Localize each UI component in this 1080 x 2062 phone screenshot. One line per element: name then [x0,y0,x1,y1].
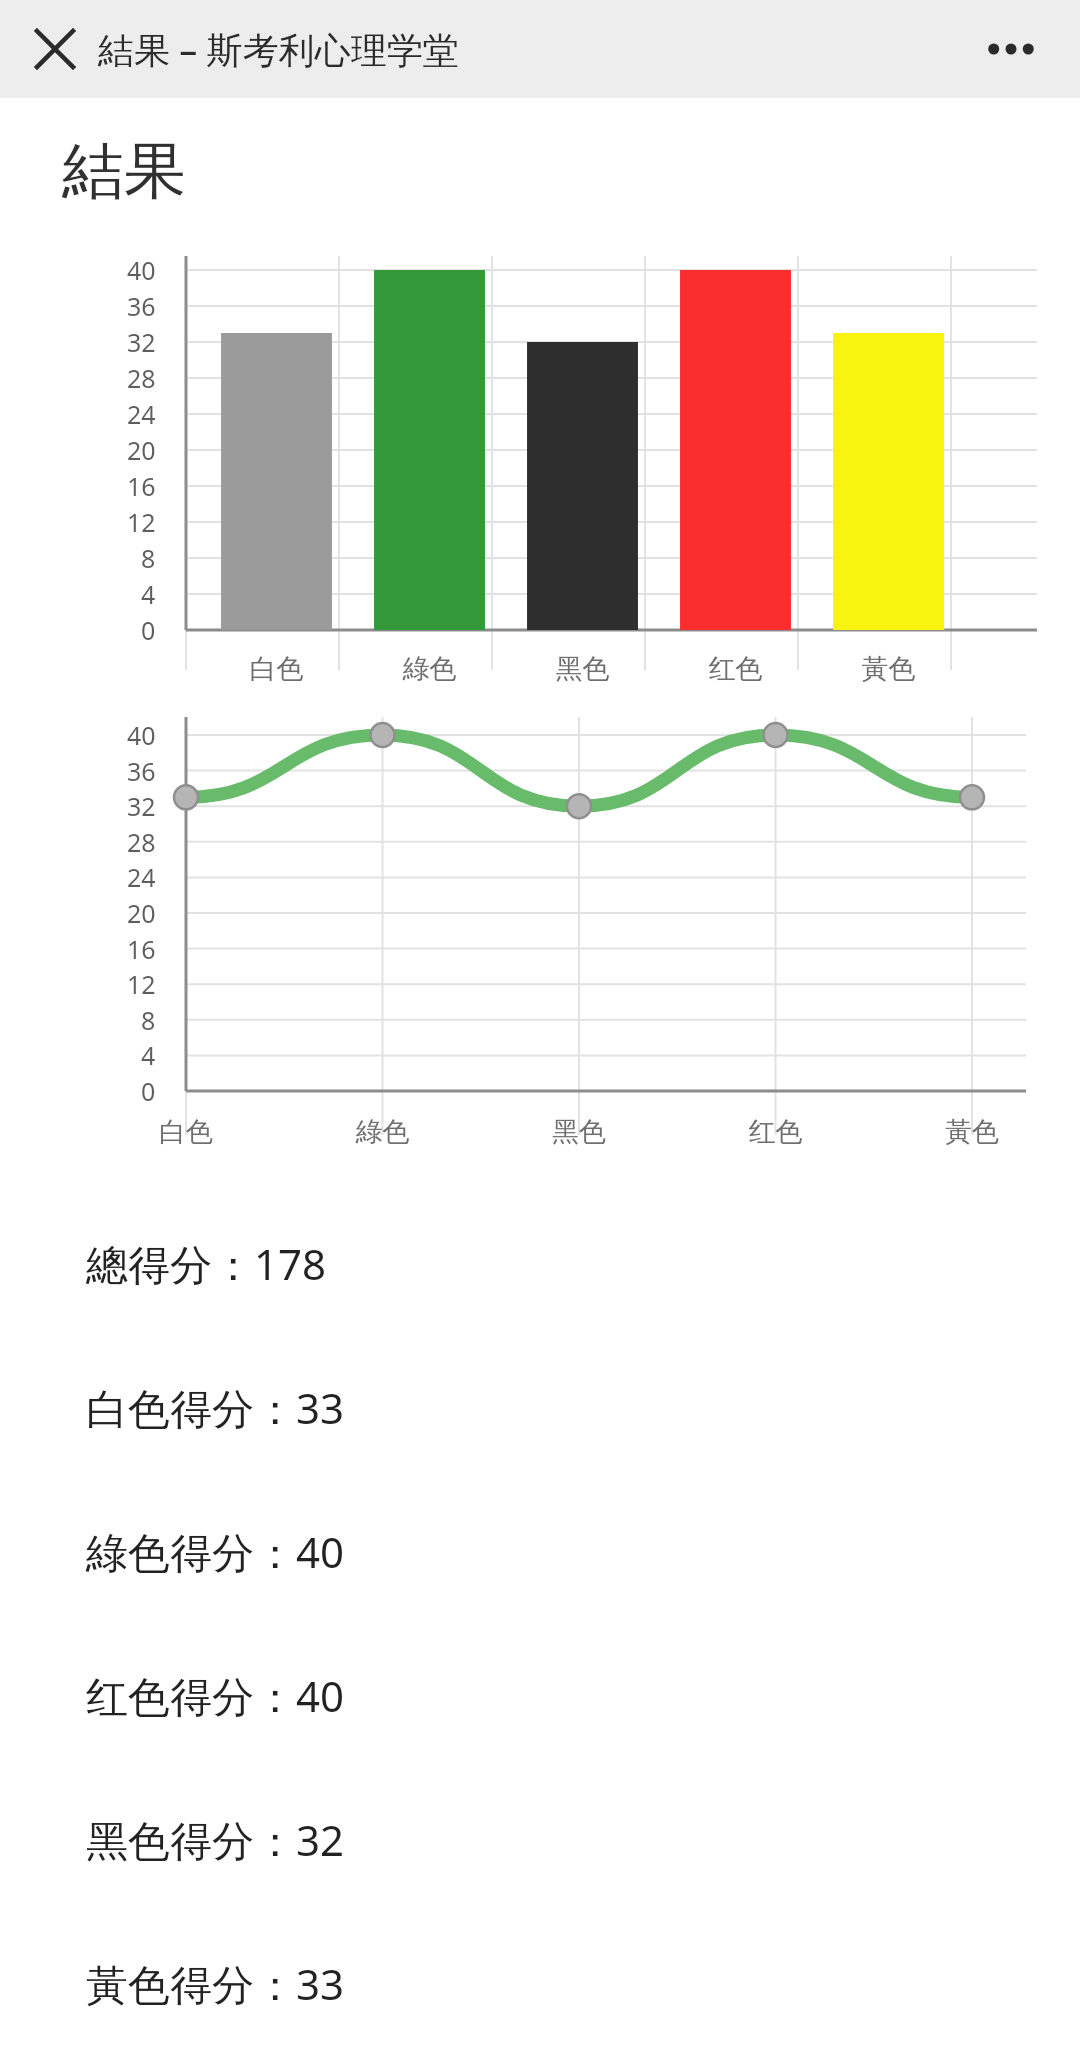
staticText: 結果 – 斯考利心理学堂 [98,25,459,74]
button[interactable]: 黑色得分：32 [0,1767,1080,1911]
button[interactable]: 綠色得分：40 [0,1479,1080,1623]
staticText: 黃色得分：33 [86,1955,345,2012]
button[interactable]: 總得分：178 [0,1191,1080,1335]
staticText: 白色得分：33 [86,1379,345,1436]
button[interactable]: Close [24,18,86,80]
staticText: 結果 [62,132,186,210]
staticText: 總得分：178 [86,1235,327,1292]
staticText: 红色得分：40 [86,1667,345,1724]
button[interactable]: More options [978,16,1044,82]
staticText: 綠色得分：40 [86,1523,345,1580]
staticText: 黑色得分：32 [86,1811,345,1868]
button[interactable]: 红色得分：40 [0,1623,1080,1767]
button[interactable]: 白色得分：33 [0,1335,1080,1479]
button[interactable]: 黃色得分：33 [0,1911,1080,2055]
